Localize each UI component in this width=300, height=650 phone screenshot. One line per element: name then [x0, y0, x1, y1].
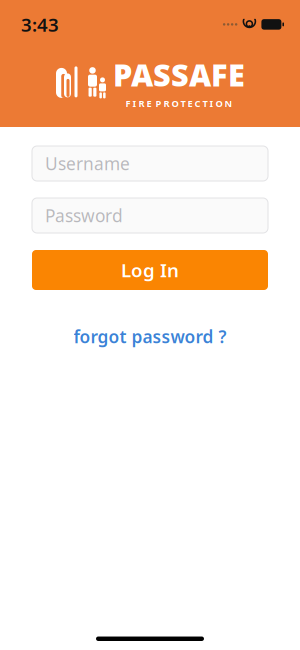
staticText: Password: [45, 204, 123, 227]
staticText: F I R E P R O T E C T I O N: [125, 97, 232, 109]
staticText: Log In: [121, 258, 179, 282]
staticText: forgot password ?: [73, 325, 226, 348]
button[interactable]: forgot password ?: [63, 320, 236, 353]
staticText: Username: [45, 152, 130, 175]
button[interactable]: Log In: [32, 250, 268, 290]
staticText: 3:43: [21, 12, 59, 37]
staticText: PASSAFE: [113, 54, 245, 95]
